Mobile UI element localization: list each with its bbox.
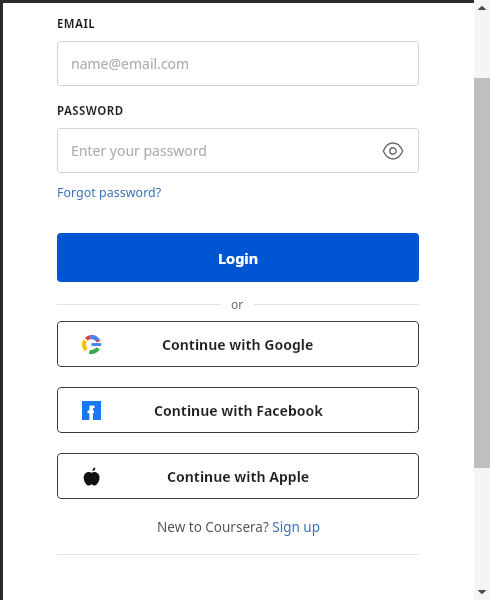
button[interactable]: Login [57,233,419,282]
staticText: name@email.com [71,54,190,73]
staticText: Enter your password [71,141,207,160]
staticText: or [231,296,244,312]
staticText: New to Coursera? Sign up [157,518,320,536]
button[interactable]: Continue with Apple [57,453,419,499]
button[interactable]: Continue with Google [57,321,419,367]
staticText: Forgot password? [57,184,162,201]
button[interactable]: Enter your password [57,128,419,173]
staticText: Login [218,248,259,268]
button[interactable]: New to Coursera? Sign up [157,518,320,536]
staticText: Continue with Facebook [154,401,323,420]
staticText: PASSWORD [57,103,124,119]
button[interactable]: name@email.com [57,41,419,86]
staticText: Continue with Google [162,335,314,354]
button[interactable]: Continue with Facebook [57,387,419,433]
button[interactable]: Show password [381,139,405,163]
button[interactable]: Forgot password? [57,183,162,202]
staticText: Continue with Apple [167,467,310,486]
staticText: EMAIL [57,16,96,32]
